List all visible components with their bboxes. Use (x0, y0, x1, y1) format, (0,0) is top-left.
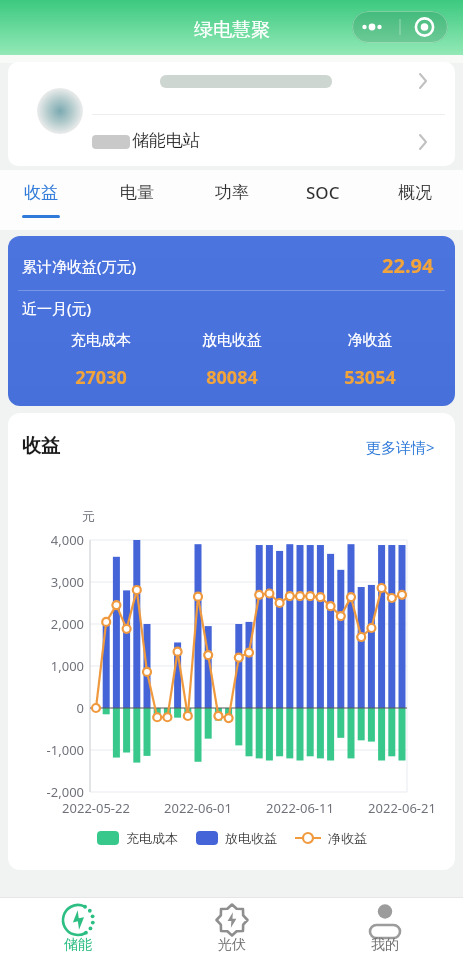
staticText: 3,000 (24, 573, 84, 591)
staticText: 充电成本 (51, 331, 151, 350)
staticText: 0 (24, 699, 84, 717)
button[interactable]: 我的 (345, 897, 425, 959)
staticText: 概况 (398, 182, 432, 203)
staticText: 4,000 (24, 531, 84, 549)
staticText: 累计净收益(万元) (22, 256, 137, 276)
button[interactable]: 概况 (381, 170, 449, 214)
button[interactable]: SOC (289, 170, 357, 214)
staticText: 净收益 (328, 830, 367, 846)
button[interactable]: 储能 (38, 897, 118, 959)
staticText: 22.94 (382, 252, 434, 279)
staticText: 放电收益 (225, 830, 277, 846)
button[interactable]: 光伏 (192, 897, 272, 959)
staticText: -2,000 (24, 783, 84, 801)
staticText: 我的 (371, 936, 399, 954)
staticText: 净收益 (320, 331, 420, 350)
staticText: 放电收益 (182, 331, 282, 350)
staticText: 80084 (182, 365, 282, 390)
staticText: 元 (82, 508, 95, 524)
button[interactable]: 收益 (7, 170, 75, 214)
button[interactable]: 电量 (103, 170, 171, 214)
staticText: 2022-06-01 (153, 799, 243, 817)
staticText: 储能 (64, 936, 92, 954)
staticText: 2022-05-22 (51, 799, 141, 817)
staticText: SOC (306, 181, 340, 204)
staticText: 2022-06-21 (357, 799, 447, 817)
staticText: 近一月(元) (22, 298, 92, 318)
staticText: 储能电站 (132, 130, 200, 151)
staticText: 27030 (51, 365, 151, 390)
staticText: 电量 (120, 182, 154, 203)
button[interactable] (352, 11, 448, 43)
staticText: 2022-06-11 (255, 799, 345, 817)
button[interactable]: 储能电站 (92, 114, 455, 166)
staticText: 功率 (215, 182, 249, 203)
staticText: 53054 (320, 365, 420, 390)
staticText: 1,000 (24, 657, 84, 675)
staticText: 收益 (22, 434, 60, 458)
button[interactable] (92, 62, 455, 114)
staticText: -1,000 (24, 741, 84, 759)
staticText: 2,000 (24, 615, 84, 633)
staticText: 光伏 (218, 936, 246, 954)
button[interactable]: 更多详情> (366, 437, 435, 457)
button[interactable]: 功率 (198, 170, 266, 214)
staticText: 收益 (24, 182, 58, 203)
staticText: 充电成本 (126, 830, 178, 846)
staticText: 绿电慧聚 (194, 18, 270, 42)
